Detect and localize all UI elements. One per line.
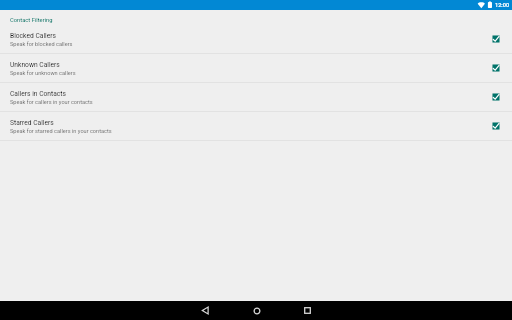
staticText: Starred Callers xyxy=(10,119,54,127)
button[interactable]: Blocked Callers xyxy=(0,25,512,54)
staticText: Contact Filtering xyxy=(10,17,53,24)
staticText: Unknown Callers xyxy=(10,61,60,69)
staticText: Speak for starred callers in your contac… xyxy=(10,128,112,135)
button[interactable]: Toggle Callers in Contacts xyxy=(492,93,500,101)
button[interactable]: Unknown Callers xyxy=(0,54,512,83)
button[interactable]: Back xyxy=(196,301,215,320)
staticText: Speak for unknown callers xyxy=(10,70,76,77)
staticText: Blocked Callers xyxy=(10,32,56,40)
button[interactable]: Toggle Starred Callers xyxy=(492,122,500,130)
button[interactable]: Callers in Contacts xyxy=(0,83,512,112)
button[interactable]: Recent apps xyxy=(298,301,317,320)
staticText: Speak for callers in your contacts xyxy=(10,99,93,106)
staticText: Speak for blocked callers xyxy=(10,41,73,48)
button[interactable]: Starred Callers xyxy=(0,112,512,141)
button[interactable]: Toggle Blocked Callers xyxy=(492,35,500,43)
staticText: Callers in Contacts xyxy=(10,90,66,98)
staticText: 12:00 xyxy=(495,2,510,9)
button[interactable]: Toggle Unknown Callers xyxy=(492,64,500,72)
button[interactable]: Home xyxy=(247,301,266,320)
